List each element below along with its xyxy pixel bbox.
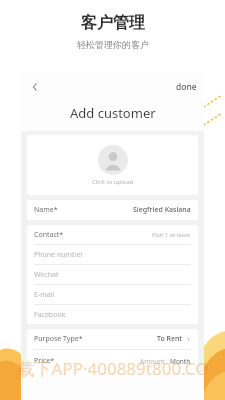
staticText: Month	[170, 357, 191, 366]
button[interactable]: done	[169, 77, 204, 97]
staticText: done	[176, 81, 197, 93]
staticText: Click to upload	[92, 178, 134, 186]
button[interactable]: Facebook	[27, 305, 198, 324]
staticText: Purpose Type*	[34, 334, 83, 344]
staticText: Facebook	[34, 310, 66, 320]
staticText: Pick 1 at least	[152, 231, 191, 239]
button[interactable]: Purpose Type*	[27, 329, 198, 349]
button[interactable]: E-mail	[27, 285, 198, 304]
staticText: Name*	[34, 205, 58, 215]
staticText: Amount	[140, 357, 165, 366]
button[interactable]: Phone number	[27, 245, 198, 264]
staticText: Siegfried Kaslana	[133, 205, 191, 215]
staticText: Contact*	[34, 230, 64, 240]
staticText: Phone number	[34, 250, 84, 260]
staticText: 轻松管理你的客户	[77, 39, 149, 50]
staticText: 载下APP·400889t800.CO	[17, 357, 209, 380]
staticText: E-mail	[34, 290, 55, 300]
staticText: Wechat	[34, 270, 59, 280]
button[interactable]: Price*	[27, 350, 198, 372]
button[interactable]: Name*	[27, 200, 198, 220]
button[interactable]: Wechat	[27, 265, 198, 284]
staticText: To Rent	[157, 334, 183, 344]
staticText: Add customer	[70, 104, 156, 122]
staticText: Price*	[34, 356, 55, 366]
button[interactable]: Back	[25, 77, 45, 97]
button[interactable]: Upload avatar	[27, 135, 198, 195]
staticText: 客户管理	[81, 13, 145, 33]
